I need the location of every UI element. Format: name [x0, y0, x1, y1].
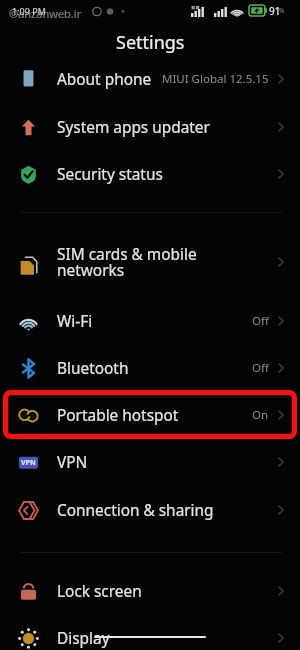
button[interactable]: SIM cards & mobile networks: [0, 234, 300, 290]
staticText: %: [279, 6, 285, 15]
button[interactable]: Bluetooth: [0, 345, 300, 391]
staticText: Portable hotspot: [57, 405, 179, 426]
button[interactable]: Lock screen: [0, 568, 300, 614]
staticText: Off: [252, 360, 269, 376]
staticText: SIM cards & mobile networks: [57, 244, 197, 280]
button[interactable]: Portable hotspot: [0, 392, 300, 438]
button[interactable]: Connection & sharing: [0, 487, 300, 533]
staticText: Off: [252, 313, 269, 329]
staticText: Settings: [116, 30, 185, 54]
staticText: 1:09 PM: [12, 5, 46, 17]
button[interactable]: About phone: [0, 56, 300, 102]
staticText: VPN: [57, 452, 88, 473]
staticText: Connection & sharing: [57, 500, 214, 521]
staticText: On: [252, 407, 269, 423]
button[interactable]: Wi-Fi: [0, 298, 300, 344]
staticText: ©anzanweb.ir: [9, 6, 82, 21]
button[interactable]: Security status: [0, 151, 300, 197]
staticText: VPN: [21, 458, 36, 468]
staticText: About phone: [57, 69, 152, 90]
staticText: MIUI Global 12.5.15: [162, 71, 269, 87]
button[interactable]: VPN: [0, 439, 300, 485]
staticText: Bluetooth: [57, 358, 129, 379]
staticText: Display: [57, 628, 110, 649]
staticText: Security status: [57, 164, 163, 185]
staticText: System apps updater: [57, 117, 210, 138]
staticText: 91: [269, 4, 281, 18]
staticText: Lock screen: [57, 581, 142, 602]
staticText: Wi-Fi: [57, 311, 93, 332]
button[interactable]: Display: [0, 615, 300, 650]
button[interactable]: System apps updater: [0, 104, 300, 150]
